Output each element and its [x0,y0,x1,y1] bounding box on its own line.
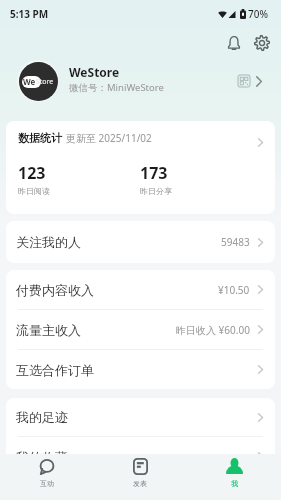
staticText: 5:13 PM [10,7,49,21]
button[interactable]: Settings [248,29,276,57]
staticText: Store [36,77,54,87]
button[interactable]: We [0,57,281,105]
staticText: 59483 [221,235,250,249]
staticText: We [23,76,36,87]
button[interactable]: 互动 [0,454,93,490]
staticText: 付费内容收入 [16,282,94,298]
button[interactable]: 我的收藏 [6,437,275,476]
staticText: 关注我的人 [16,234,81,250]
staticText: 173 [140,162,168,184]
staticText: 流量主收入 [16,322,81,338]
button[interactable]: 互选合作订单 [6,350,275,389]
staticText: 数据统计 [18,131,62,145]
staticText: 我的收藏 [16,449,68,465]
button[interactable]: 发表 [93,454,187,490]
staticText: 更新至 2025/11/02 [66,131,152,145]
button[interactable]: 关注我的人 [6,221,275,263]
staticText: 昨日收入 ¥60.00 [176,323,250,337]
button[interactable]: 流量主收入 [6,310,275,349]
staticText: 互选合作订单 [16,362,94,378]
button[interactable]: 我 [187,454,281,490]
button[interactable]: 我的足迹 [6,398,275,436]
staticText: 发表 [133,479,147,488]
staticText: 互动 [40,479,54,488]
staticText: 我的足迹 [16,409,68,425]
button[interactable]: 数据统计 [6,121,275,214]
staticText: ¥10.50 [218,283,250,297]
staticText: 70% [248,7,268,21]
button[interactable]: 付费内容收入 [6,270,275,309]
staticText: 昨日分享 [140,186,172,196]
button[interactable]: Notifications [220,29,248,57]
staticText: 微信号：MiniWeStore [69,81,164,94]
staticText: 我 [231,479,238,488]
staticText: WeStore [69,64,120,80]
staticText: 昨日阅读 [18,186,50,196]
staticText: 123 [18,162,46,184]
